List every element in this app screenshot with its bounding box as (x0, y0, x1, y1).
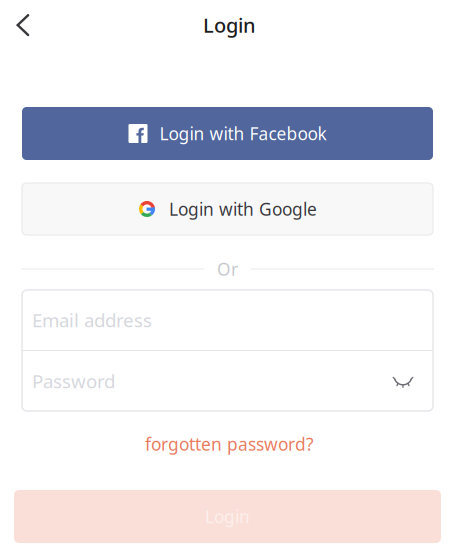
staticText: Or (217, 257, 238, 280)
staticText: Login with Google (169, 197, 317, 220)
staticText: Login (205, 505, 250, 528)
button[interactable]: Login with Facebook (22, 107, 433, 160)
staticText: Email address (32, 308, 152, 332)
staticText: Login with Facebook (159, 122, 326, 145)
staticText: Login (203, 12, 256, 38)
staticText: Password (32, 369, 115, 393)
button[interactable]: forgotten password? (135, 426, 324, 462)
button[interactable]: Back (0, 2, 46, 48)
button[interactable]: Login with Google (22, 183, 433, 235)
staticText: forgotten password? (145, 432, 314, 455)
button[interactable]: Show password (388, 366, 418, 396)
